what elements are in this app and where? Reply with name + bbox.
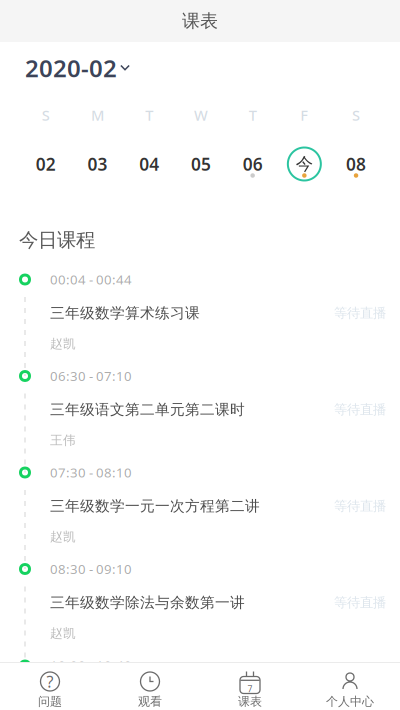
staticText: 个人中心 — [326, 694, 374, 709]
staticText: T — [145, 105, 153, 125]
button[interactable]: T — [123, 94, 175, 180]
staticText: 三年级数学一元一次方程第二讲 — [50, 497, 260, 515]
button[interactable]: 个人中心 — [300, 662, 400, 710]
staticText: 等待直播 — [334, 594, 386, 611]
staticText: 03 — [88, 152, 108, 176]
staticText: 7 — [247, 683, 252, 695]
button[interactable]: W — [175, 94, 227, 180]
staticText: 三年级语文第二单元第二课时 — [50, 400, 245, 419]
staticText: 等待直播 — [334, 498, 386, 514]
staticText: 06 — [243, 152, 263, 176]
button[interactable]: ? — [0, 662, 100, 710]
staticText: S — [42, 105, 50, 125]
button[interactable]: T — [227, 94, 278, 180]
button[interactable]: F — [278, 94, 330, 180]
staticText: T — [249, 105, 257, 125]
staticText: 问题 — [38, 694, 62, 709]
staticText: 三年级数学算术练习课 — [50, 304, 200, 322]
staticText: 课表 — [238, 694, 262, 709]
staticText: 赵凯 — [50, 336, 76, 352]
staticText: W — [194, 105, 208, 125]
staticText: 08 — [346, 152, 366, 176]
button[interactable]: M — [72, 94, 123, 180]
staticText: 00:04 - 00:44 — [50, 270, 132, 288]
button[interactable]: 7 — [200, 662, 300, 710]
staticText: 王伟 — [50, 432, 76, 448]
button[interactable]: 10:00 - 10:40 — [0, 648, 400, 710]
staticText: 三年级数学除法与余数第一讲 — [50, 593, 245, 612]
staticText: 等待直播 — [334, 305, 386, 321]
staticText: 02 — [36, 152, 56, 176]
staticText: M — [91, 105, 104, 125]
button[interactable]: 08:30 - 09:10 — [0, 551, 400, 648]
staticText: 观看 — [138, 694, 162, 709]
staticText: 08:30 - 09:10 — [50, 560, 132, 578]
staticText: 今 — [296, 153, 313, 175]
staticText: 赵凯 — [50, 625, 76, 641]
button[interactable]: S — [330, 94, 382, 180]
staticText: 06:30 - 07:10 — [50, 367, 132, 385]
button[interactable]: 观看 — [100, 662, 200, 710]
button[interactable]: 00:04 - 00:44 — [0, 262, 400, 358]
staticText: 07:30 - 08:10 — [50, 463, 132, 481]
staticText: ? — [46, 671, 53, 692]
staticText: 赵凯 — [50, 529, 76, 545]
staticText: 今日课程 — [19, 228, 95, 252]
staticText: 三年级语文第三单元第一课时 — [50, 690, 245, 708]
staticText: S — [352, 105, 360, 125]
staticText: 课表 — [182, 10, 218, 32]
staticText: 05 — [191, 152, 211, 176]
staticText: 2020-02 — [25, 52, 117, 84]
staticText: 等待直播 — [334, 691, 386, 707]
button[interactable]: 06:30 - 07:10 — [0, 358, 400, 455]
button[interactable]: 2020-02 — [0, 42, 400, 94]
button[interactable]: 07:30 - 08:10 — [0, 455, 400, 551]
staticText: 等待直播 — [334, 401, 386, 418]
staticText: 04 — [139, 152, 159, 176]
button[interactable]: S — [20, 94, 72, 180]
staticText: 10:00 - 10:40 — [50, 656, 132, 674]
staticText: F — [300, 105, 308, 125]
